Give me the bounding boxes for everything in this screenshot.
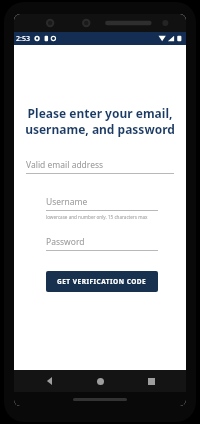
- staticText: Password: [46, 236, 85, 248]
- staticText: GET VERIFICATION CODE: [57, 277, 147, 286]
- button[interactable]: Username: [46, 196, 158, 211]
- button[interactable]: GET VERIFICATION CODE: [46, 271, 158, 292]
- button[interactable]: Valid email address: [26, 159, 174, 174]
- button[interactable]: Back: [35, 370, 65, 392]
- button[interactable]: Password: [46, 236, 158, 251]
- staticText: lowercase and number only. 15 characters…: [46, 214, 148, 220]
- button[interactable]: Recent apps: [136, 370, 166, 392]
- button[interactable]: Home: [85, 370, 115, 392]
- staticText: Valid email address: [26, 159, 104, 171]
- staticText: Username: [46, 196, 88, 208]
- staticText: 2:53: [16, 34, 30, 44]
- staticText: Please enter your email, username, and p…: [14, 105, 186, 137]
